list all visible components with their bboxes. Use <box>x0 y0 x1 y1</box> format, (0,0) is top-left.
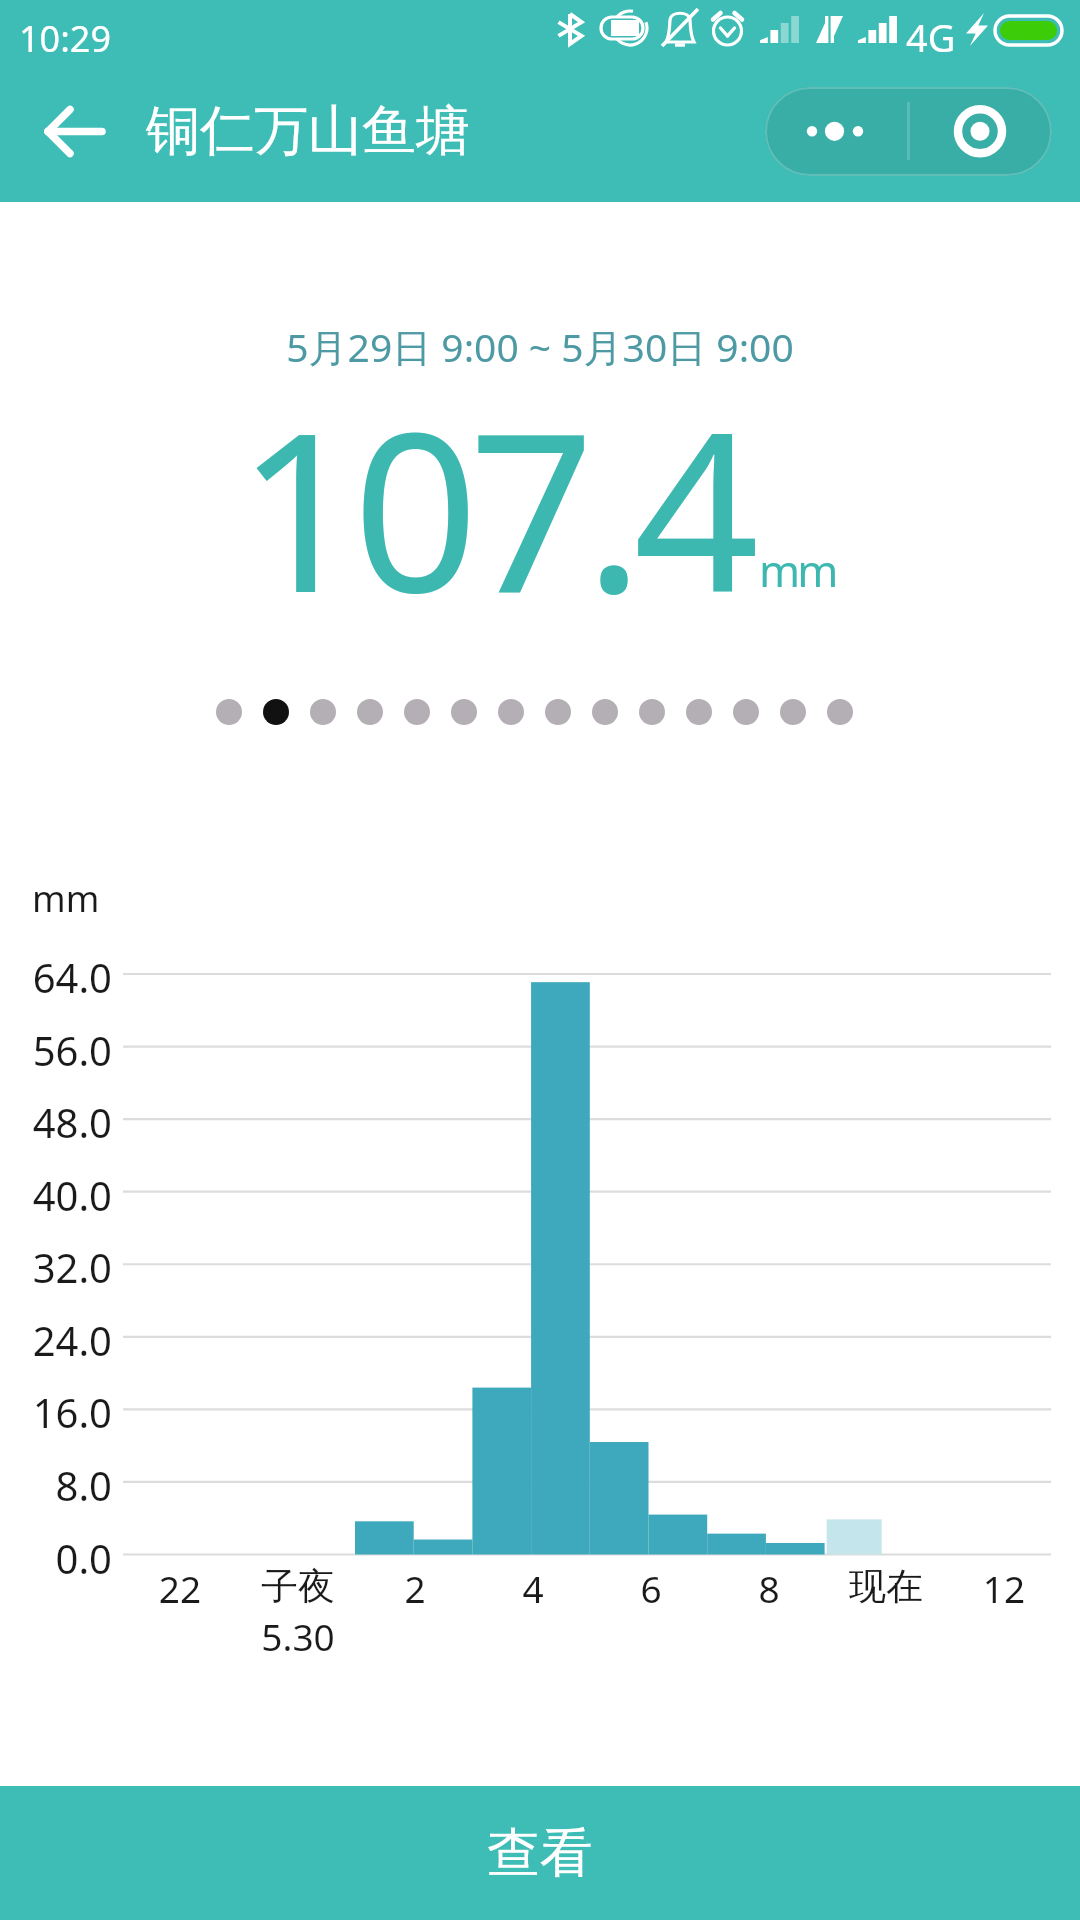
staticText: mm <box>32 874 100 923</box>
staticText: 16.0 <box>0 1385 112 1439</box>
button[interactable]: Page 13 <box>780 699 806 725</box>
staticText: 5.30 <box>218 1611 378 1661</box>
button[interactable]: 查看 <box>0 1786 1080 1920</box>
staticText: 6 <box>571 1563 731 1613</box>
staticText: 2 <box>335 1563 495 1613</box>
staticText: 22 <box>100 1563 260 1613</box>
staticText: 40.0 <box>0 1168 112 1222</box>
staticText: 64.0 <box>0 950 112 1004</box>
staticText: mm <box>759 540 836 600</box>
staticText: 24.0 <box>0 1313 112 1367</box>
staticText: 12 <box>924 1563 1080 1613</box>
staticText: 48.0 <box>0 1095 112 1149</box>
staticText: 5月29日 9:00 ~ 5月30日 9:00 <box>0 320 1080 373</box>
staticText: 子夜 <box>218 1563 378 1610</box>
staticText: 8.0 <box>0 1458 112 1512</box>
button[interactable]: Page 11 <box>686 699 712 725</box>
button[interactable]: Page 6 <box>451 699 477 725</box>
staticText: 8 <box>689 1563 849 1613</box>
button[interactable]: More options <box>765 87 908 176</box>
button[interactable]: Page 7 <box>498 699 524 725</box>
staticText: 查看 <box>487 1820 593 1887</box>
staticText: 10:29 <box>19 14 112 63</box>
button[interactable]: Page 12 <box>733 699 759 725</box>
button[interactable]: Page 10 <box>639 699 665 725</box>
staticText: 107.4 <box>237 357 750 657</box>
button[interactable]: Page 3 <box>310 699 336 725</box>
staticText: 铜仁万山鱼塘 <box>146 97 470 165</box>
staticText: 现在 <box>806 1563 966 1610</box>
button[interactable]: Back <box>40 97 110 167</box>
staticText: 4 <box>453 1563 613 1613</box>
staticText: 32.0 <box>0 1240 112 1294</box>
button[interactable]: Close mini program <box>910 87 1052 176</box>
button[interactable]: Page 5 <box>404 699 430 725</box>
button[interactable]: Page 9 <box>592 699 618 725</box>
button[interactable]: Page 1 <box>216 699 242 725</box>
button[interactable]: Page 4 <box>357 699 383 725</box>
staticText: 56.0 <box>0 1023 112 1077</box>
staticText: 0.0 <box>0 1531 112 1585</box>
button[interactable]: Page 14 <box>827 699 853 725</box>
button[interactable]: Page 2 <box>263 699 289 725</box>
staticText: 4G <box>906 11 956 63</box>
button[interactable]: Page 8 <box>545 699 571 725</box>
